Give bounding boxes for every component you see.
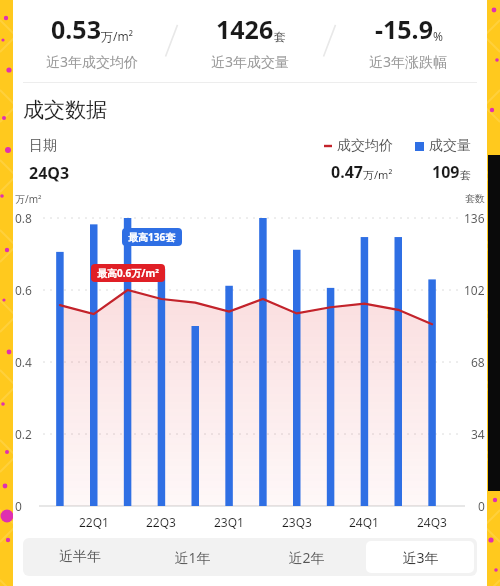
- staticText: 近3年: [402, 548, 439, 567]
- staticText: 23Q1: [214, 514, 244, 530]
- staticText: 近3年涨跌幅: [369, 52, 448, 71]
- staticText: 23Q3: [282, 514, 312, 530]
- staticText: 近3年成交均价: [46, 52, 139, 71]
- staticText: 136: [464, 210, 485, 226]
- staticText: 0.47: [331, 161, 363, 183]
- staticText: 近1年: [174, 548, 211, 567]
- staticText: 34: [471, 426, 485, 442]
- staticText: 0: [478, 498, 485, 514]
- staticText: 近2年: [288, 548, 325, 567]
- staticText: 成交均价: [337, 137, 393, 155]
- staticText: 近半年: [59, 548, 101, 566]
- staticText: 109: [432, 161, 460, 183]
- staticText: 22Q3: [146, 514, 176, 530]
- staticText: %: [433, 28, 443, 44]
- staticText: 24Q3: [29, 162, 70, 184]
- staticText: 22Q1: [79, 514, 109, 530]
- staticText: 成交数据: [23, 97, 107, 123]
- staticText: 24Q1: [349, 514, 379, 530]
- staticText: 日期: [29, 137, 57, 155]
- staticText: 102: [464, 282, 485, 298]
- staticText: 0.4: [15, 354, 32, 370]
- staticText: 近3年成交量: [211, 52, 290, 71]
- staticText: 套: [460, 168, 471, 182]
- staticText: 最高0.6万/m²: [97, 266, 159, 280]
- button[interactable]: 近3年: [366, 541, 474, 573]
- staticText: 0: [15, 498, 22, 514]
- staticText: 68: [471, 354, 485, 370]
- staticText: 成交量: [429, 137, 471, 155]
- button[interactable]: 近半年: [26, 541, 133, 573]
- button[interactable]: 近2年: [252, 541, 360, 573]
- staticText: 0.8: [15, 210, 32, 226]
- staticText: 1426: [216, 12, 274, 46]
- staticText: 万/m²: [101, 28, 133, 44]
- staticText: 套数: [465, 192, 485, 205]
- staticText: 万/m²: [15, 192, 42, 206]
- staticText: 最高136套: [128, 230, 176, 244]
- staticText: 0.53: [51, 12, 101, 46]
- button[interactable]: 近1年: [139, 541, 246, 573]
- staticText: 0.2: [15, 426, 32, 442]
- staticText: 万/m²: [363, 167, 393, 182]
- staticText: 24Q3: [417, 514, 447, 530]
- staticText: 套: [274, 29, 286, 44]
- staticText: -15.9: [375, 12, 433, 46]
- staticText: 0.6: [15, 282, 32, 298]
